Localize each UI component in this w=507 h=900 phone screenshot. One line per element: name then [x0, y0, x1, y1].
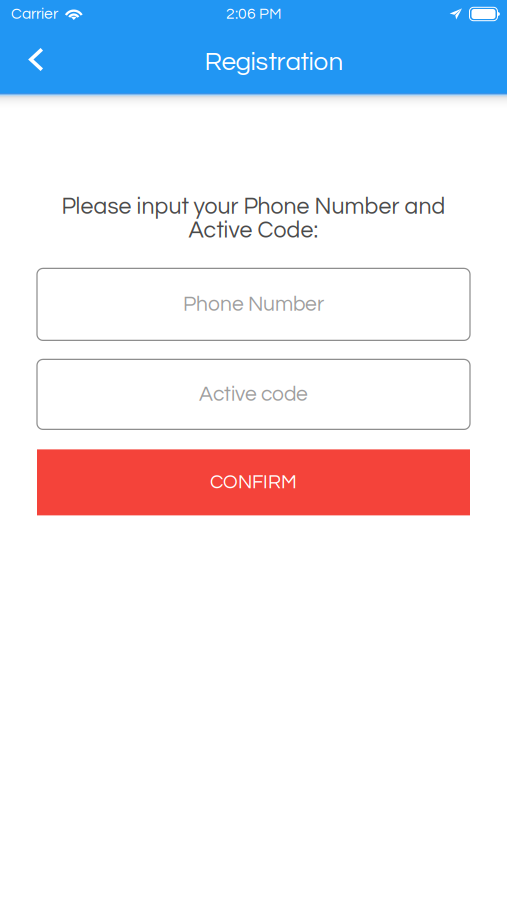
button[interactable]: CONFIRM: [37, 449, 470, 515]
staticText: Active Code:: [188, 219, 318, 242]
staticText: Registration: [204, 49, 343, 75]
staticText: CONFIRM: [210, 472, 297, 492]
staticText: Please input your Phone Number and: [61, 195, 445, 219]
button[interactable]: Phone Number: [37, 268, 470, 340]
staticText: Carrier: [11, 6, 58, 22]
button[interactable]: Active code: [37, 359, 470, 429]
staticText: Phone Number: [183, 294, 324, 315]
staticText: Active code: [199, 384, 308, 405]
button[interactable]: Back: [0, 36, 63, 84]
staticText: 2:06 PM: [226, 6, 281, 22]
